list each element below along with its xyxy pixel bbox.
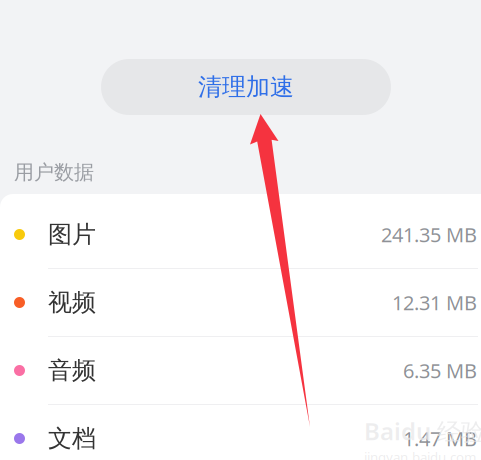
button[interactable]: 清理加速 [101, 59, 391, 115]
button[interactable]: 音频 [0, 337, 481, 404]
staticText: 6.35 MB [403, 357, 477, 384]
staticText: 1.47 MB [403, 425, 477, 452]
staticText: jingyan.baidu.com [364, 448, 476, 460]
button[interactable]: 文档 [0, 405, 481, 460]
staticText: 图片 [48, 220, 96, 249]
staticText: 241.35 MB [381, 221, 477, 248]
staticText: 音频 [48, 356, 96, 385]
button[interactable]: 图片 [0, 201, 481, 268]
staticText: 视频 [48, 288, 96, 317]
staticText: 文档 [48, 424, 96, 453]
button[interactable]: 视频 [0, 269, 481, 336]
staticText: 清理加速 [198, 72, 294, 102]
staticText: 用户数据 [14, 160, 94, 185]
staticText: 12.31 MB [392, 289, 477, 316]
staticText: Baidu 经验 [364, 415, 481, 447]
